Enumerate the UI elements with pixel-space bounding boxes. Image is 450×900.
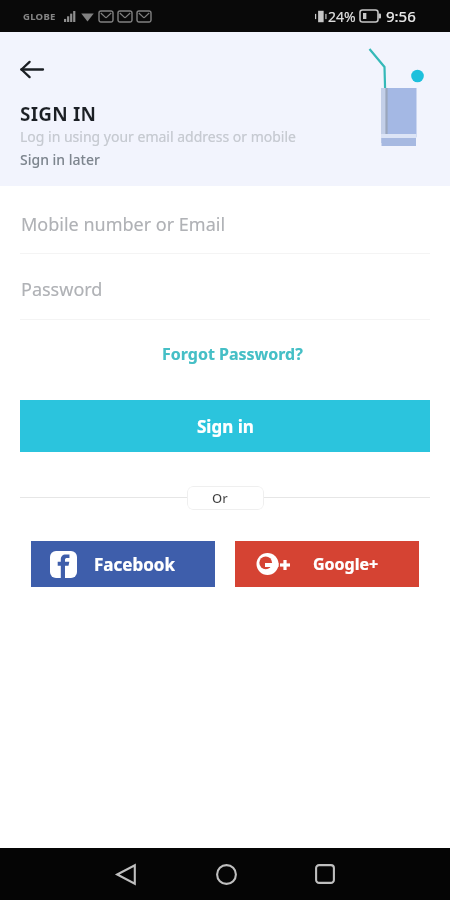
button[interactable]: Recent apps bbox=[299, 848, 351, 900]
staticText: Or bbox=[212, 489, 228, 507]
button[interactable]: Sign in later bbox=[20, 146, 108, 173]
staticText: Log in using your email address or mobil… bbox=[20, 127, 296, 146]
button[interactable]: Forgot Password? bbox=[152, 340, 313, 368]
staticText: Mobile number or Email bbox=[21, 212, 226, 237]
button[interactable]: Home bbox=[200, 848, 252, 900]
staticText: Sign in later bbox=[20, 150, 100, 169]
staticText: 24% bbox=[328, 7, 356, 26]
button[interactable]: Mobile number or Email bbox=[0, 212, 450, 254]
staticText: Forgot Password? bbox=[162, 343, 303, 365]
button[interactable]: Google+ bbox=[235, 541, 419, 587]
button[interactable]: Back bbox=[100, 848, 152, 900]
button[interactable]: Password bbox=[0, 277, 450, 320]
staticText: Google+ bbox=[313, 553, 379, 575]
staticText: Facebook bbox=[94, 553, 175, 576]
button[interactable]: Back bbox=[10, 47, 54, 91]
staticText: Sign in bbox=[197, 415, 254, 438]
button[interactable]: Facebook bbox=[31, 541, 215, 587]
staticText: GLOBE bbox=[23, 10, 56, 23]
button[interactable]: Sign in bbox=[20, 400, 430, 452]
staticText: SIGN IN bbox=[20, 101, 97, 127]
staticText: Password bbox=[21, 277, 103, 302]
staticText: 9:56 bbox=[386, 6, 416, 26]
